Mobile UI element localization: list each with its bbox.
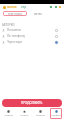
staticText: Через карт xyxy=(7,40,23,44)
staticText: метка xyxy=(34,12,42,16)
button[interactable]: Каталог xyxy=(16,107,32,120)
other: По телефону xyxy=(55,35,58,38)
staticText: ПРОДОЛЖИТЬ xyxy=(21,101,43,105)
staticText: Каталог xyxy=(20,114,29,117)
button[interactable]: Корзина xyxy=(32,107,48,120)
staticText: сер xyxy=(21,5,27,9)
button[interactable]: Главная xyxy=(0,107,16,120)
staticText: По телефону xyxy=(7,34,25,38)
button[interactable]: текст поля xyxy=(3,11,27,16)
staticText: Главная xyxy=(4,114,13,117)
button[interactable]: person xyxy=(2,33,58,39)
staticText: текст поля xyxy=(8,12,22,16)
staticText: АВТОРИЗ xyxy=(2,23,15,27)
button[interactable]: person xyxy=(2,27,58,33)
button[interactable]: person xyxy=(2,39,58,45)
other: По имени xyxy=(55,29,58,32)
staticText: Корзина xyxy=(36,114,45,117)
staticText: Профиль xyxy=(51,114,61,117)
other: person xyxy=(2,29,5,32)
other: Через карт xyxy=(55,41,58,44)
other: person xyxy=(2,35,5,38)
staticText: По имени xyxy=(7,28,21,32)
button[interactable]: ПРОДОЛЖИТЬ xyxy=(2,99,62,107)
button[interactable]: Профиль xyxy=(48,107,64,120)
staticText: компа xyxy=(7,5,17,9)
other: person xyxy=(2,41,5,44)
